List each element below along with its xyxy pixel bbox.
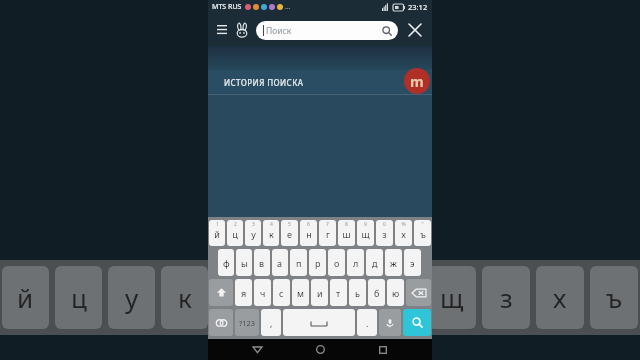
staticText: 7: [326, 221, 329, 228]
staticText: MTS RUS: [212, 2, 242, 12]
staticText: й: [17, 280, 34, 315]
staticText: Поиск: [266, 25, 292, 37]
button[interactable]: Space: [283, 309, 355, 336]
button[interactable]: б: [368, 279, 385, 306]
staticText: э: [410, 257, 415, 269]
staticText: 5: [288, 221, 291, 228]
button[interactable]: Search: [403, 309, 431, 336]
button[interactable]: ,: [261, 309, 281, 336]
button[interactable]: ь: [349, 279, 366, 306]
button[interactable]: э: [404, 249, 421, 276]
staticText: …: [285, 2, 291, 12]
staticText: ю: [392, 287, 400, 299]
staticText: 4: [270, 221, 273, 228]
button[interactable]: 7: [319, 220, 336, 246]
staticText: я: [241, 287, 247, 299]
button[interactable]: м: [292, 279, 309, 306]
button[interactable]: 2: [227, 220, 243, 246]
button[interactable]: ч: [254, 279, 271, 306]
button[interactable]: 5: [281, 220, 298, 246]
button[interactable]: Backspace: [406, 279, 431, 306]
button[interactable]: с: [273, 279, 290, 306]
button[interactable]: я: [235, 279, 252, 306]
staticText: ы: [241, 257, 248, 269]
button[interactable]: ф: [218, 249, 234, 276]
staticText: б: [374, 287, 380, 299]
staticText: а: [277, 257, 283, 269]
button[interactable]: 3: [245, 220, 261, 246]
button[interactable]: л: [347, 249, 364, 276]
staticText: 6: [307, 221, 310, 228]
staticText: о: [334, 257, 340, 269]
staticText: г: [326, 228, 330, 240]
button[interactable]: %: [395, 220, 412, 246]
button[interactable]: Logo: [232, 20, 252, 40]
staticText: ь: [355, 287, 360, 299]
button[interactable]: в: [254, 249, 270, 276]
staticText: m: [410, 72, 424, 91]
staticText: %: [401, 221, 406, 228]
button[interactable]: Emoji: [209, 309, 233, 336]
staticText: ц: [71, 280, 87, 315]
button[interactable]: ю: [387, 279, 404, 306]
staticText: е: [287, 228, 292, 240]
staticText: ": [421, 221, 424, 228]
button[interactable]: ж: [385, 249, 402, 276]
staticText: х: [553, 280, 567, 315]
staticText: ц: [232, 228, 238, 240]
staticText: ъ: [606, 280, 623, 315]
staticText: ж: [390, 257, 397, 269]
button[interactable]: .: [357, 309, 377, 336]
staticText: 8: [345, 221, 348, 228]
button[interactable]: ИСТОРИЯ ПОИСКА: [208, 70, 432, 94]
staticText: с: [279, 287, 284, 299]
button[interactable]: п: [290, 249, 307, 276]
button[interactable]: Shift: [209, 279, 233, 306]
button[interactable]: Menu: [214, 22, 230, 38]
button[interactable]: 1: [209, 220, 225, 246]
button[interactable]: д: [366, 249, 383, 276]
staticText: н: [306, 228, 312, 240]
staticText: 23:12: [408, 2, 428, 12]
staticText: .: [366, 317, 369, 329]
staticText: 9: [364, 221, 367, 228]
button[interactable]: Voice input: [379, 309, 401, 336]
button[interactable]: Close: [404, 19, 426, 41]
staticText: п: [296, 257, 302, 269]
button[interactable]: ы: [236, 249, 252, 276]
staticText: и: [317, 287, 323, 299]
staticText: у: [251, 228, 256, 240]
button[interactable]: Recents: [369, 339, 397, 360]
staticText: ш: [342, 228, 351, 240]
button[interactable]: ": [414, 220, 431, 246]
button[interactable]: Home: [306, 339, 334, 360]
button[interactable]: и: [311, 279, 328, 306]
staticText: щ: [361, 228, 370, 240]
button[interactable]: Back: [243, 339, 271, 360]
button[interactable]: 9: [357, 220, 374, 246]
staticText: 1: [216, 221, 219, 228]
button[interactable]: 8: [338, 220, 355, 246]
button[interactable]: 4: [263, 220, 279, 246]
staticText: щ: [440, 280, 464, 315]
button[interactable]: 0: [376, 220, 393, 246]
staticText: ИСТОРИЯ ПОИСКА: [224, 77, 304, 88]
staticText: в: [259, 257, 265, 269]
staticText: ,: [270, 317, 273, 329]
button[interactable]: т: [330, 279, 347, 306]
staticText: ?123: [239, 318, 256, 328]
staticText: ч: [260, 287, 266, 299]
staticText: ф: [223, 257, 230, 269]
button[interactable]: о: [328, 249, 345, 276]
button[interactable]: а: [272, 249, 288, 276]
staticText: р: [315, 257, 321, 269]
staticText: к: [269, 228, 274, 240]
button[interactable]: р: [309, 249, 326, 276]
button[interactable]: 6: [300, 220, 317, 246]
staticText: з: [500, 280, 513, 315]
staticText: 3: [252, 221, 255, 228]
button[interactable]: Поиск: [256, 21, 398, 40]
staticText: ъ: [420, 228, 426, 240]
staticText: 2: [234, 221, 237, 228]
button[interactable]: Symbols: [235, 309, 259, 336]
